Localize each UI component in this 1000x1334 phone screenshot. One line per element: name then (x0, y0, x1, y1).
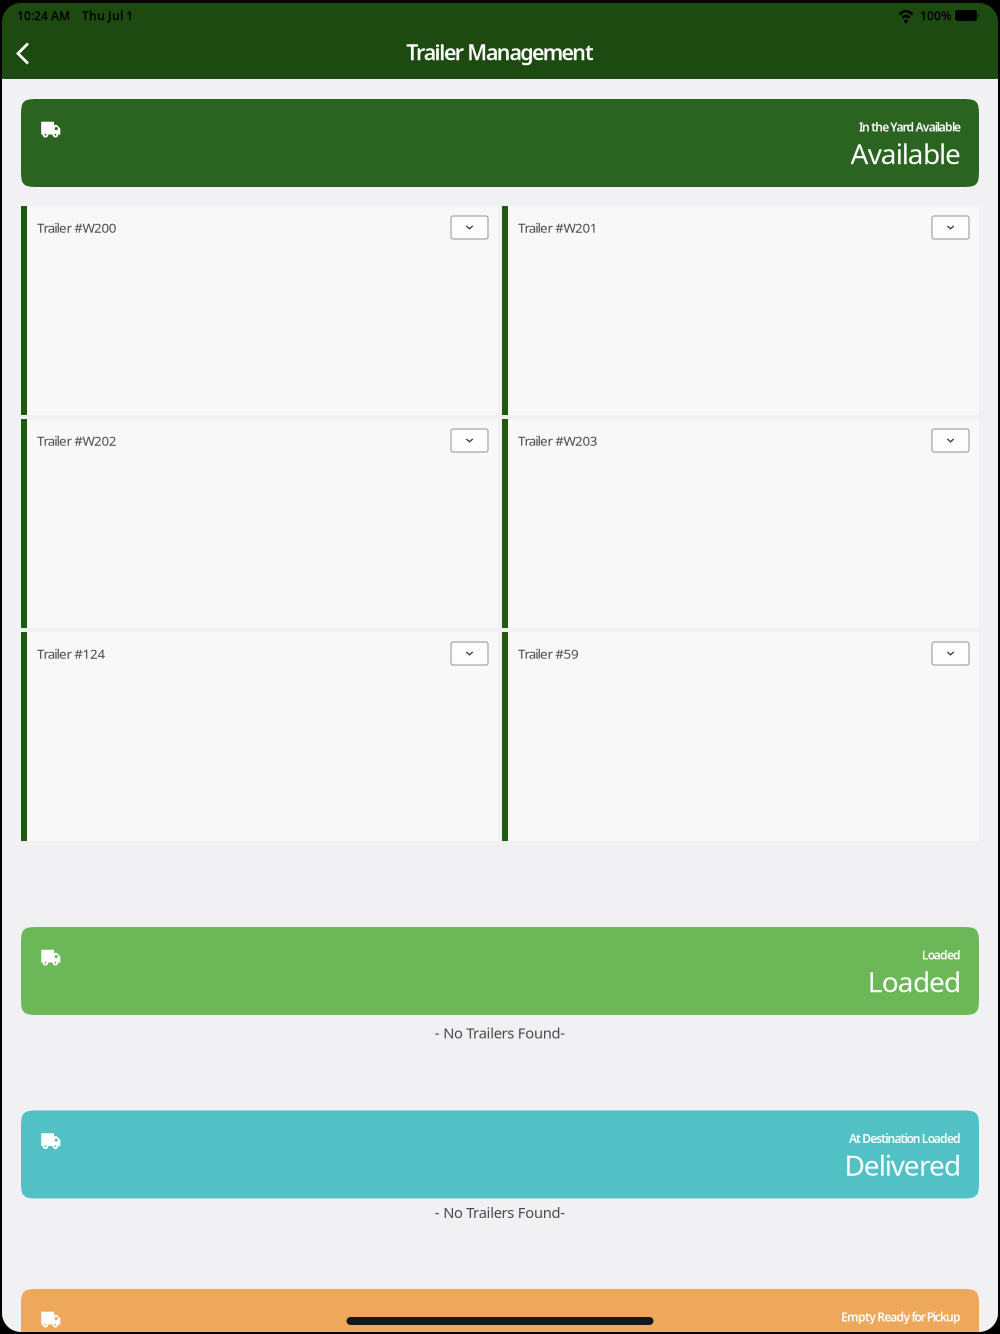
staticText: Loaded (868, 963, 961, 1000)
staticText: Trailer #W203 (518, 432, 598, 449)
staticText: 10:24 AM (17, 7, 70, 23)
button[interactable]: Expand Trailer #W201 (932, 216, 969, 239)
staticText: Delivered (845, 1146, 961, 1183)
staticText: 100% (914, 7, 955, 23)
staticText: Trailer #W201 (518, 219, 598, 236)
button[interactable]: Back (5, 31, 40, 75)
button[interactable]: Expand Trailer #59 (932, 642, 969, 665)
staticText: - No Trailers Found- (435, 1023, 565, 1042)
staticText: In the Yard Available (859, 119, 961, 135)
staticText: Trailer #W200 (37, 219, 117, 236)
button[interactable]: Expand Trailer #W200 (451, 216, 488, 239)
staticText: Thu Jul 1 (70, 7, 133, 23)
staticText: Trailer Management (406, 38, 594, 66)
staticText: Trailer #59 (518, 645, 579, 662)
button[interactable]: At Destination Loaded (21, 1110, 979, 1198)
staticText: - No Trailers Found- (435, 1202, 565, 1222)
button[interactable]: Expand Trailer #W203 (932, 429, 969, 452)
button[interactable]: Expand Trailer #W202 (451, 429, 488, 452)
staticText: Trailer #W202 (37, 432, 117, 449)
staticText: Empty Ready for Pickup (841, 1309, 961, 1325)
button[interactable]: Empty Ready for Pickup (21, 1289, 979, 1334)
staticText: Loaded (922, 947, 961, 963)
button[interactable]: Loaded (21, 927, 979, 1015)
staticText: Available (851, 135, 961, 172)
staticText: Pickup (880, 1325, 961, 1334)
button[interactable]: In the Yard Available (21, 99, 979, 187)
staticText: At Destination Loaded (849, 1130, 961, 1146)
staticText: Trailer #124 (37, 645, 105, 662)
button[interactable]: Expand Trailer #124 (451, 642, 488, 665)
